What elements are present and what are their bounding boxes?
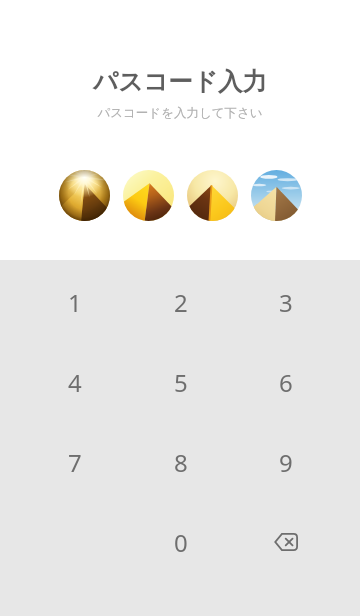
staticText: 5 (174, 366, 188, 399)
staticText: 6 (279, 366, 293, 399)
other: Delete (274, 533, 298, 551)
button[interactable]: 2 (128, 282, 233, 322)
button[interactable]: 8 (128, 442, 233, 482)
button[interactable]: 5 (128, 362, 233, 402)
staticText: パスコード入力 (0, 66, 360, 97)
staticText: 2 (174, 286, 188, 319)
button[interactable]: Delete (233, 522, 338, 562)
staticText: 4 (68, 366, 82, 399)
staticText: 0 (174, 526, 188, 559)
staticText: 9 (279, 446, 293, 479)
button[interactable]: 7 (22, 442, 128, 482)
staticText: パスコードを入力して下さい (0, 105, 360, 121)
button[interactable]: 0 (128, 522, 233, 562)
button[interactable]: 6 (233, 362, 338, 402)
button[interactable]: 4 (22, 362, 128, 402)
staticText: 1 (68, 286, 82, 319)
staticText: 7 (68, 446, 82, 479)
button[interactable]: 9 (233, 442, 338, 482)
staticText: 3 (279, 286, 293, 319)
button[interactable]: 1 (22, 282, 128, 322)
button[interactable]: 3 (233, 282, 338, 322)
staticText: 8 (174, 446, 188, 479)
